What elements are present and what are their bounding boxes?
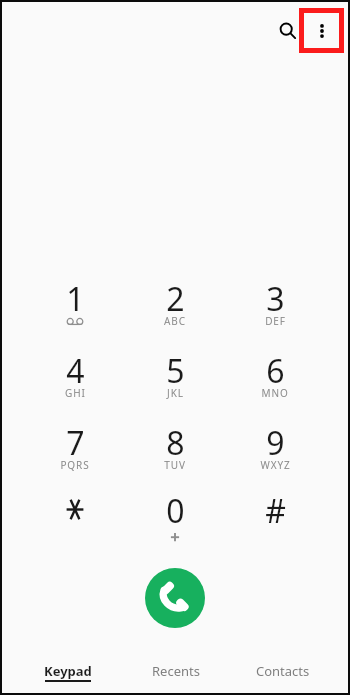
staticText: Keypad — [44, 662, 92, 680]
staticText: 3 — [266, 277, 285, 321]
staticText: 5 — [166, 349, 185, 393]
staticText: Contacts — [256, 662, 310, 680]
button[interactable]: 3 — [225, 277, 325, 349]
staticText: 8 — [166, 421, 185, 465]
button[interactable]: Contacts — [229, 653, 336, 695]
button[interactable]: 9 — [225, 421, 325, 493]
button[interactable]: Keypad — [14, 653, 122, 695]
staticText: TUV — [164, 458, 186, 472]
button[interactable]: 2 — [125, 277, 225, 349]
staticText: 9 — [266, 421, 285, 465]
staticText: DEF — [265, 314, 286, 328]
button[interactable]: # — [225, 489, 325, 561]
button[interactable]: 5 — [125, 349, 225, 421]
button[interactable]: Search — [264, 7, 308, 51]
staticText: 0 — [166, 489, 185, 533]
button[interactable]: More options — [299, 8, 344, 53]
button[interactable]: Call — [145, 568, 205, 628]
staticText: GHI — [65, 386, 86, 400]
staticText: 6 — [266, 349, 285, 393]
staticText: # — [265, 489, 286, 533]
staticText: JKL — [167, 386, 184, 400]
button[interactable]: 6 — [225, 349, 325, 421]
staticText: PQRS — [60, 458, 90, 472]
staticText: MNO — [261, 386, 289, 400]
button[interactable]: 0 — [125, 489, 225, 561]
staticText: ABC — [164, 314, 186, 328]
button[interactable]: Star — [25, 489, 125, 561]
button[interactable]: 1 — [25, 277, 125, 349]
button[interactable]: 7 — [25, 421, 125, 493]
staticText: 2 — [166, 277, 185, 321]
button[interactable]: 4 — [25, 349, 125, 421]
button[interactable]: 8 — [125, 421, 225, 493]
staticText: 7 — [66, 421, 85, 465]
staticText: Recents — [152, 662, 200, 680]
staticText: 4 — [66, 349, 85, 393]
staticText: WXYZ — [260, 458, 291, 472]
staticText: 1 — [66, 277, 85, 321]
button[interactable]: Recents — [122, 653, 229, 695]
